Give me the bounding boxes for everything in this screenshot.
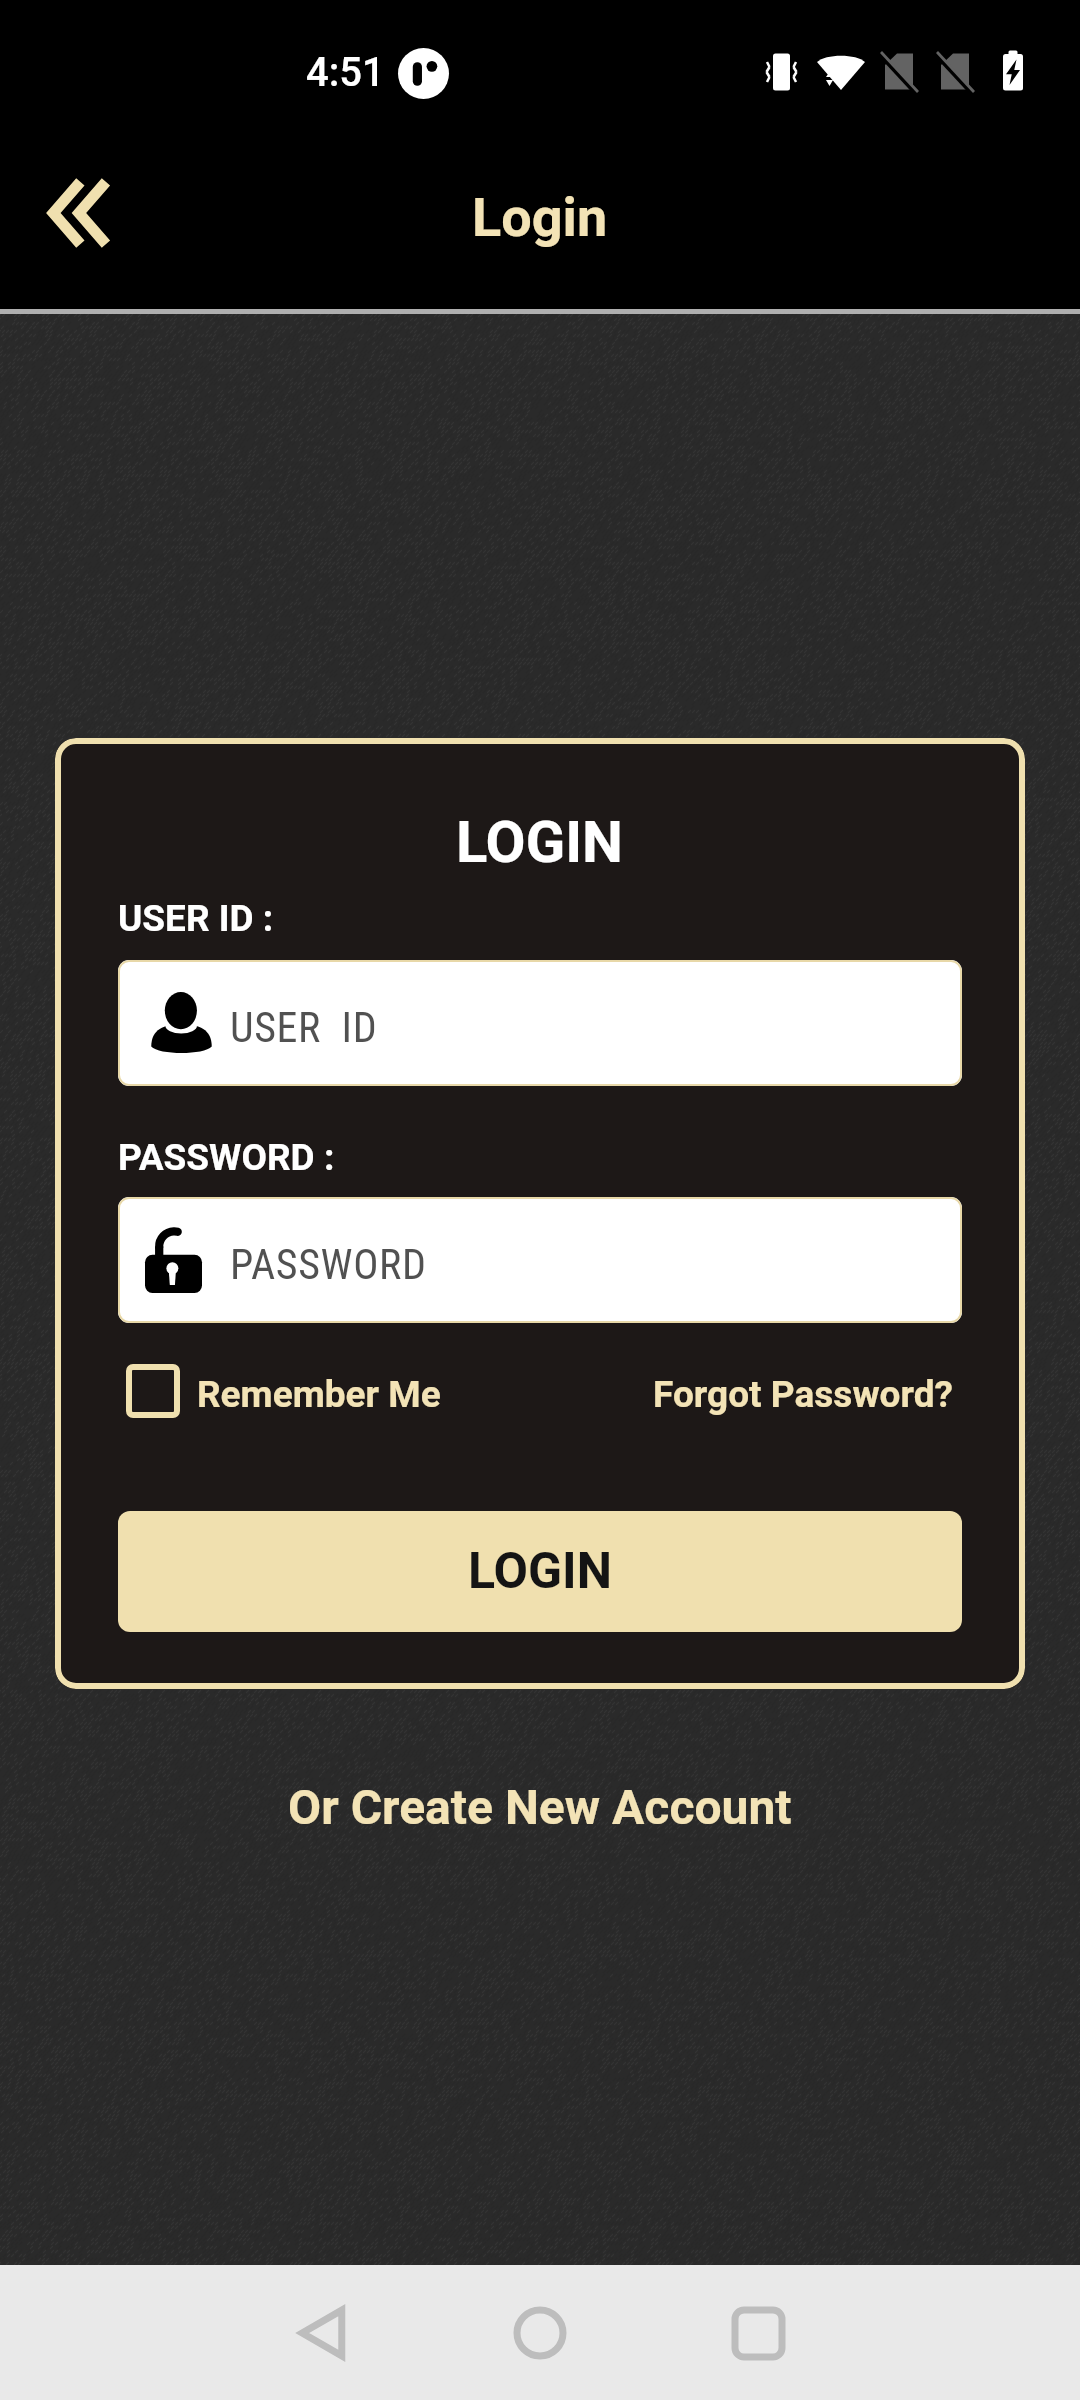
staticText: USER ID : xyxy=(118,897,274,940)
staticText: Or Create New Account xyxy=(288,1779,792,1835)
staticText: PASSWORD : xyxy=(118,1136,335,1179)
button[interactable]: USER ID xyxy=(118,960,962,1086)
button[interactable]: Home xyxy=(475,2268,605,2398)
button[interactable]: Recents xyxy=(693,2268,823,2398)
button[interactable]: Remember Me xyxy=(126,1367,441,1421)
staticText: Login xyxy=(472,186,608,249)
button[interactable]: Back xyxy=(257,2268,387,2398)
button[interactable]: Back xyxy=(27,158,137,268)
staticText: PASSWORD xyxy=(230,1240,427,1289)
staticText: 4:51 xyxy=(306,49,385,96)
staticText: LOGIN xyxy=(456,808,624,876)
button[interactable]: Or Create New Account xyxy=(0,1767,1080,1847)
button[interactable]: PASSWORD xyxy=(118,1197,962,1323)
staticText: Remember Me xyxy=(197,1373,441,1416)
staticText: USER ID xyxy=(230,1003,378,1052)
button[interactable]: LOGIN xyxy=(118,1511,962,1632)
staticText: LOGIN xyxy=(468,1542,613,1601)
button[interactable]: Forgot Password? xyxy=(653,1373,953,1416)
